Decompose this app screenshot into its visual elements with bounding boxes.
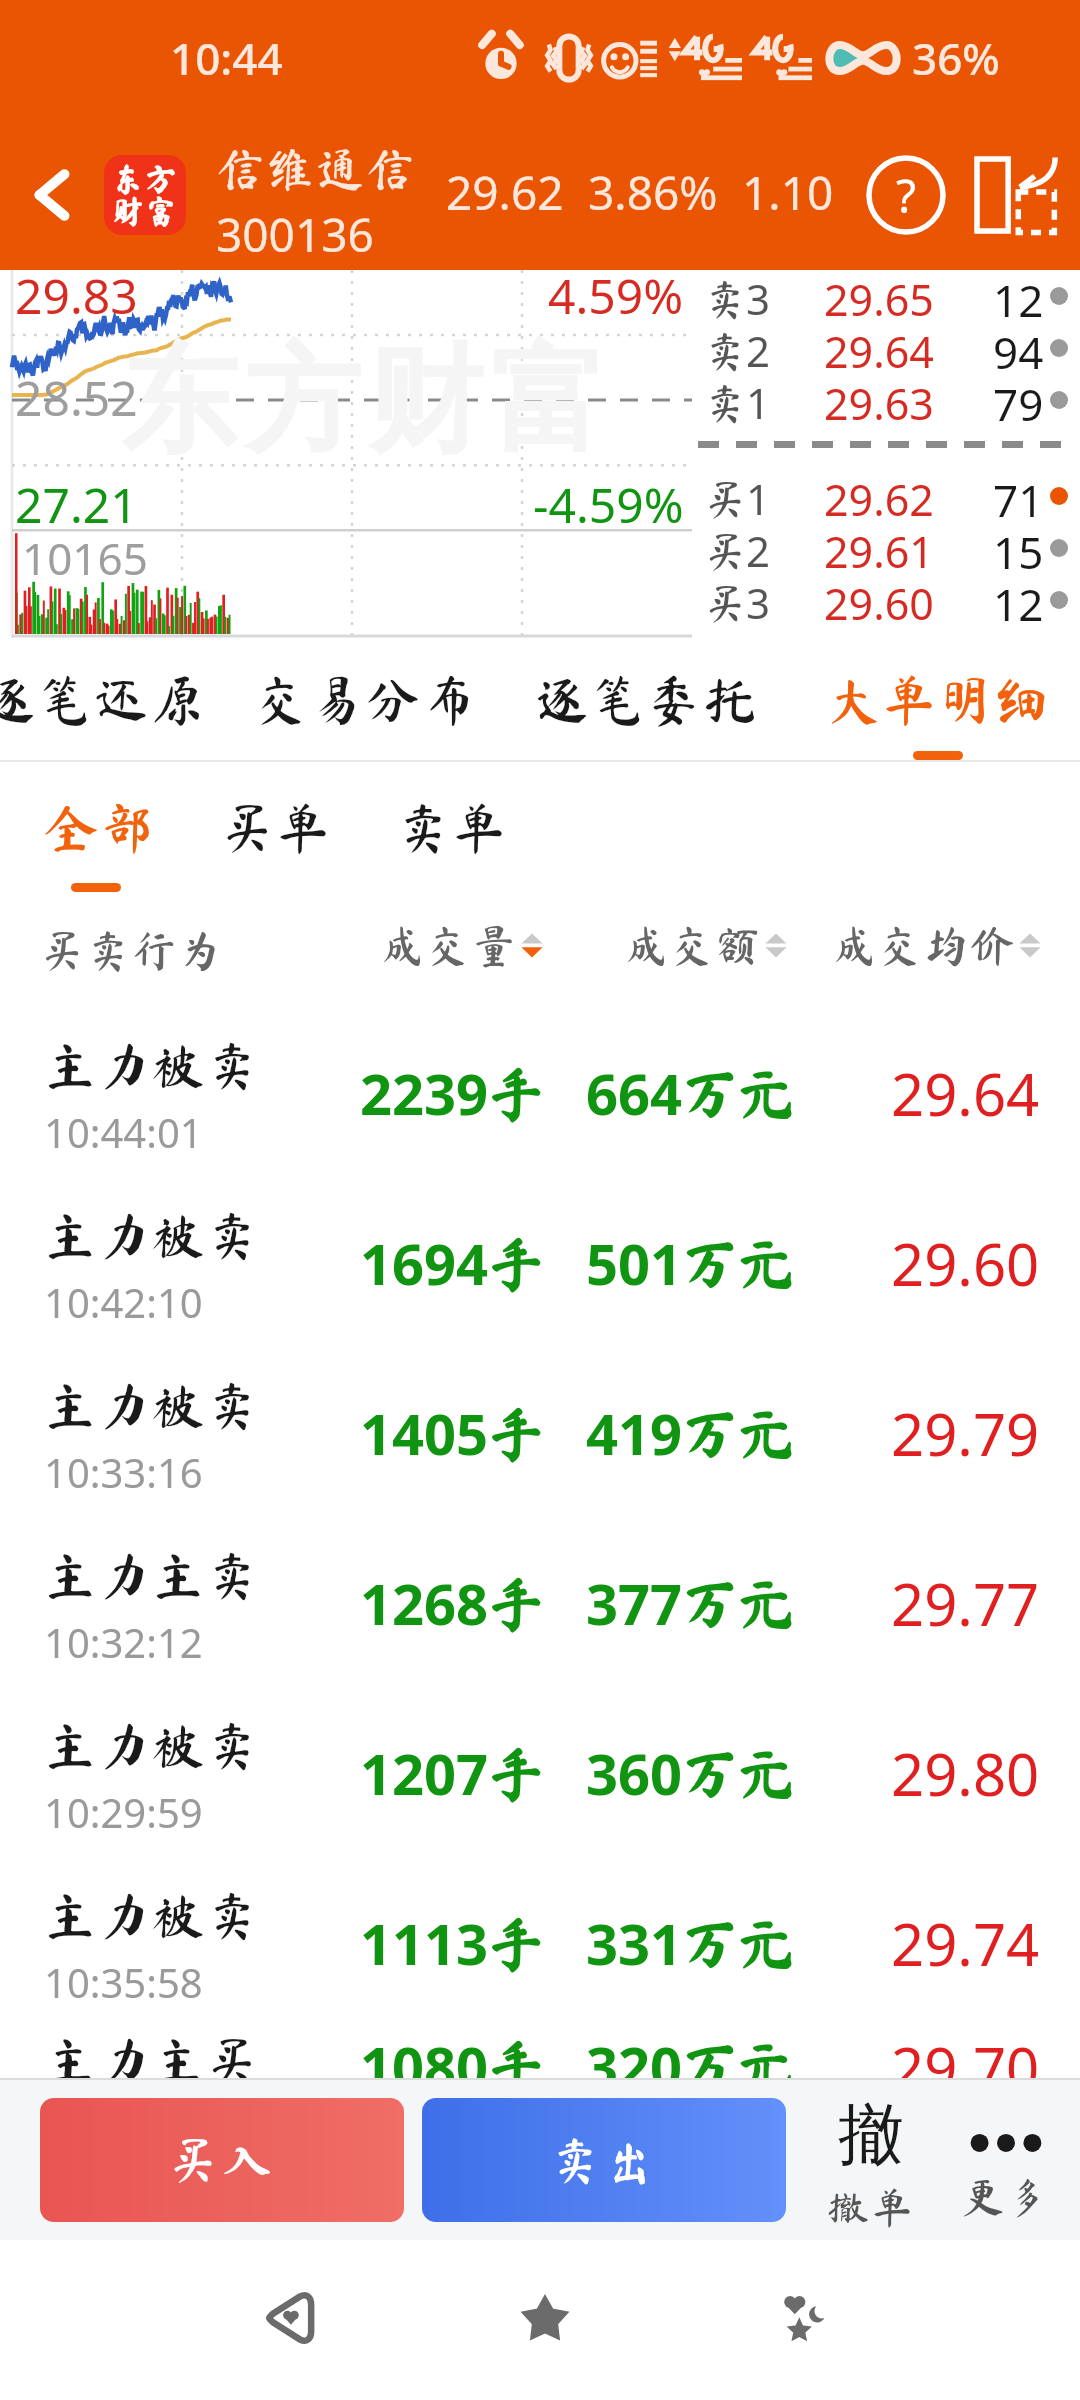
button[interactable]: 卖1 [692, 374, 1080, 426]
staticText: 29.74 [891, 1904, 1040, 1983]
staticText: 12 [993, 270, 1044, 322]
staticText: 买3 [704, 574, 771, 626]
button[interactable]: 大单明细 [816, 638, 1060, 760]
staticText: 买单 [220, 800, 332, 854]
staticText: 29.60 [824, 574, 934, 626]
staticText: 29.62 [824, 470, 934, 522]
button[interactable]: Back [0, 120, 104, 270]
staticText: 3.86% [588, 161, 718, 224]
button[interactable]: 主力被卖 [0, 1348, 1080, 1518]
staticText: 10:35:58 [44, 1955, 203, 2009]
staticText: 29.83 [15, 263, 138, 328]
staticText: 29.60 [891, 1224, 1040, 1303]
button[interactable]: 主力被卖 [0, 1178, 1080, 1348]
staticText: 1.10 [742, 161, 834, 224]
staticText: 320万元 [586, 2028, 846, 2078]
staticText: 财富 [112, 195, 179, 227]
staticText: 主力主买 [44, 2034, 261, 2078]
staticText: 664万元 [586, 1055, 846, 1131]
staticText: 1268手 [360, 1565, 586, 1641]
button[interactable]: Home [465, 2268, 625, 2368]
button[interactable]: 卖单 [396, 762, 572, 910]
staticText: -4.59% [533, 472, 684, 537]
staticText: 主力被卖 [44, 1379, 261, 1431]
staticText: 29.62 [446, 161, 564, 224]
staticText: 主力主卖 [44, 1549, 261, 1601]
button[interactable]: 主力被卖 [0, 1688, 1080, 1858]
staticText: 大单明细 [826, 672, 1050, 726]
button[interactable]: Help [852, 120, 960, 270]
staticText: 29.79 [891, 1394, 1040, 1473]
staticText: 撤单 [827, 2186, 916, 2228]
button[interactable]: 买3 [692, 574, 1080, 626]
staticText: 29.61 [824, 522, 934, 574]
staticText: 10:44:01 [44, 1105, 203, 1159]
staticText: 全部 [44, 800, 156, 854]
staticText: 撤 [838, 2093, 904, 2176]
staticText: 27.21 [15, 472, 138, 537]
staticText: 28.52 [15, 365, 138, 430]
staticText: 主力被卖 [44, 1719, 261, 1771]
staticText: 1113手 [360, 1905, 586, 1981]
staticText: 信维通信 [216, 145, 417, 193]
staticText: 东方财富 [118, 328, 610, 474]
button[interactable]: 成交均价 [832, 922, 1042, 968]
staticText: 主力被卖 [44, 1039, 261, 1091]
staticText: 交易分布 [254, 672, 478, 726]
button[interactable]: 成交额 [624, 922, 788, 968]
staticText: 2239手 [360, 1055, 586, 1131]
button[interactable]: 主力被卖 [0, 1008, 1080, 1178]
staticText: 36% [912, 28, 1000, 88]
button[interactable]: Back [210, 2268, 370, 2368]
staticText: 卖单 [396, 800, 508, 854]
button[interactable]: Change layout [960, 120, 1070, 270]
staticText: 71 [993, 470, 1044, 522]
button[interactable]: 卖2 [692, 322, 1080, 374]
staticText: 主力被卖 [44, 1209, 261, 1261]
staticText: 卖出 [550, 2135, 658, 2185]
staticText: 买1 [704, 470, 771, 522]
staticText: 29.65 [824, 270, 934, 322]
staticText: 29.77 [891, 1564, 1040, 1643]
staticText: 15 [993, 522, 1044, 574]
button[interactable]: 买1 [692, 470, 1080, 522]
staticText: 29.63 [824, 374, 934, 426]
button[interactable]: 主力被卖 [0, 1858, 1080, 2028]
button[interactable]: 逐笔还原 [0, 638, 214, 760]
staticText: 10:29:59 [44, 1785, 203, 1839]
staticText: ? [896, 164, 916, 227]
staticText: 12 [993, 574, 1044, 626]
button[interactable]: More [940, 2080, 1072, 2240]
button[interactable]: 成交量 [380, 922, 544, 968]
staticText: 1080手 [360, 2028, 586, 2078]
staticText: 10:33:16 [44, 1445, 203, 1499]
button[interactable]: 撤 [802, 2080, 940, 2240]
staticText: 买入 [168, 2135, 276, 2185]
staticText: 94 [993, 322, 1044, 374]
staticText: 419万元 [586, 1395, 846, 1471]
button[interactable]: 卖3 [692, 270, 1080, 322]
staticText: 10165 [22, 528, 148, 588]
staticText: 29.70 [891, 2028, 1040, 2078]
staticText: 29.64 [891, 1054, 1040, 1133]
staticText: 逐笔委托 [535, 672, 759, 726]
button[interactable]: 主力主卖 [0, 1518, 1080, 1688]
staticText: 29.64 [824, 322, 934, 374]
button[interactable]: 交易分布 [244, 638, 488, 760]
staticText: 成交均价 [832, 923, 1016, 967]
button[interactable]: 逐笔委托 [518, 638, 776, 760]
staticText: 10:32:12 [44, 1615, 203, 1669]
staticText: 卖1 [704, 374, 771, 426]
staticText: 成交量 [380, 923, 518, 967]
button[interactable]: Recent apps [726, 2264, 886, 2368]
staticText: 买2 [704, 522, 771, 574]
button[interactable]: 全部 [44, 762, 220, 910]
staticText: 1694手 [360, 1225, 586, 1301]
button[interactable]: 买入 [40, 2098, 404, 2222]
button[interactable]: 买2 [692, 522, 1080, 574]
button[interactable]: 主力主买 [0, 2028, 1080, 2078]
staticText: 360万元 [586, 1735, 846, 1811]
button[interactable]: 买单 [220, 762, 396, 910]
staticText: 331万元 [586, 1905, 846, 1981]
button[interactable]: 卖出 [422, 2098, 786, 2222]
